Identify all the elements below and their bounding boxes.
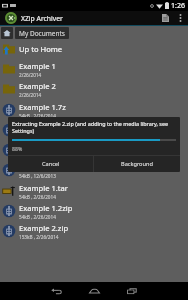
button[interactable]: Home <box>81 282 107 300</box>
button[interactable]: Cancel <box>8 156 93 172</box>
staticText: My Documents <box>19 29 65 38</box>
button[interactable]: Home <box>1 27 13 39</box>
staticText: 54kB , 2/26/2014 <box>19 113 56 119</box>
staticText: Example 2 <box>19 81 56 91</box>
staticText: 153kB , 2/26/2014 <box>19 234 59 240</box>
button[interactable]: Background <box>94 156 180 172</box>
staticText: 54kB , 2/26/2014 <box>19 214 56 220</box>
button[interactable]: New archive <box>157 11 173 25</box>
staticText: Example 1 <box>19 61 56 71</box>
staticText: Background <box>121 160 153 168</box>
staticText: 2/26/2014 <box>19 92 42 98</box>
staticText: Extracting Example 2.zip (and adding to … <box>12 120 177 134</box>
staticText: 2/26/2014 <box>19 72 42 78</box>
button[interactable]: Example 2 <box>0 79 188 99</box>
staticText: 54kB , 2/26/2014 <box>19 133 56 139</box>
staticText: Cancel <box>42 160 60 168</box>
button[interactable]: Example 1.bz2 <box>0 120 188 140</box>
button[interactable]: Example 1.gz <box>0 160 188 180</box>
button[interactable]: Example 1.tar <box>0 181 188 201</box>
button[interactable]: Example 1 <box>0 59 188 79</box>
staticText: Example 1.gz <box>19 162 67 172</box>
staticText: 88% <box>12 145 23 152</box>
staticText: Example 1.bz2 <box>19 122 71 132</box>
button[interactable]: Example 1.7z <box>0 100 188 120</box>
button[interactable]: Back <box>43 282 69 300</box>
button[interactable]: Up to Home <box>0 39 188 59</box>
button[interactable]: Recent apps <box>119 282 145 300</box>
staticText: 54kB , 12/6/2013 <box>19 173 56 179</box>
staticText: 54kB , 2/26/2014 <box>19 194 56 200</box>
staticText: 1:26 <box>171 1 185 11</box>
staticText: Example 2.zip <box>19 223 69 233</box>
button[interactable]: More options <box>176 11 185 25</box>
staticText: 54kB , 2/26/2014 <box>19 153 56 159</box>
button[interactable]: Example 1.rar <box>0 140 188 160</box>
staticText: XZip Archiver <box>21 14 63 23</box>
button[interactable]: My Documents <box>15 27 69 39</box>
staticText: Up to Home <box>19 44 63 54</box>
staticText: Example 1.rar <box>19 142 69 152</box>
button[interactable]: Example 1.2zip <box>0 201 188 221</box>
staticText: Example 1.tar <box>19 183 69 193</box>
staticText: Example 1.7z <box>19 102 66 112</box>
button[interactable]: Example 2.zip <box>0 221 188 241</box>
staticText: Example 1.2zip <box>19 203 73 213</box>
